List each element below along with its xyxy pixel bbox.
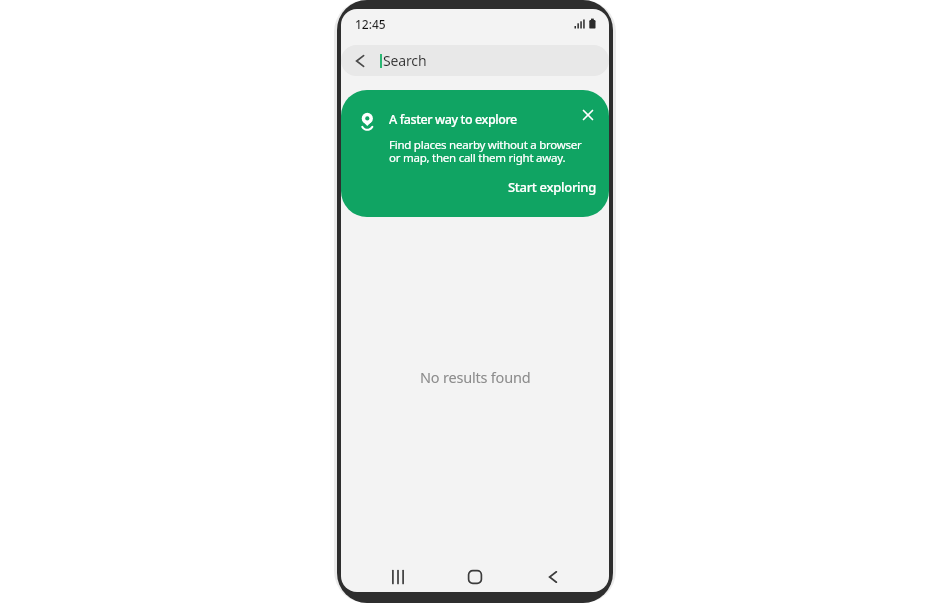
- button[interactable]: Search: [341, 45, 609, 76]
- staticText: Search: [383, 51, 427, 70]
- staticText: Start exploring: [508, 178, 596, 196]
- staticText: No results found: [420, 367, 531, 387]
- button[interactable]: [579, 106, 597, 124]
- staticText: 12:45: [355, 16, 386, 32]
- staticText: A faster way to explore: [389, 111, 517, 128]
- button[interactable]: [459, 565, 491, 589]
- staticText: Find places nearby without a browser or …: [389, 137, 582, 165]
- button[interactable]: A faster way to explore: [341, 90, 609, 217]
- button[interactable]: Start exploring: [508, 178, 609, 196]
- button[interactable]: [382, 565, 414, 589]
- button[interactable]: [537, 565, 569, 589]
